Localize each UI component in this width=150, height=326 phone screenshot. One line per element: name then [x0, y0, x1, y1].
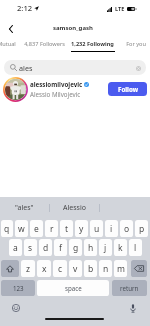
button[interactable]: 1,232 Following	[69, 35, 116, 51]
staticText: l	[134, 242, 137, 254]
staticText: 2:12	[17, 3, 33, 13]
staticText: i	[110, 223, 113, 235]
staticText: alessiomilvojevic	[30, 80, 83, 88]
staticText: q	[4, 223, 10, 235]
staticText: v	[73, 263, 78, 275]
button[interactable]: q	[1, 220, 13, 237]
button[interactable]: Alessio	[49, 197, 99, 218]
button[interactable]: f	[54, 239, 67, 256]
staticText: h	[88, 242, 94, 254]
button[interactable]: y	[75, 220, 88, 237]
button[interactable]: 4,837 Followers	[21, 35, 67, 51]
button[interactable]: n	[99, 260, 112, 277]
staticText: m	[117, 263, 125, 275]
button[interactable]: Back	[3, 21, 18, 36]
staticText: w	[18, 223, 25, 235]
staticText: a	[13, 242, 18, 254]
staticText: ales	[19, 63, 33, 73]
staticText: z	[26, 263, 30, 275]
button[interactable]: j	[99, 239, 112, 256]
button[interactable]: i	[105, 220, 118, 237]
staticText: n	[103, 263, 109, 275]
button[interactable]: For you	[120, 35, 150, 51]
staticText: s	[28, 242, 33, 254]
staticText: 4,837 Followers	[24, 40, 65, 48]
staticText: Mutual	[0, 40, 16, 48]
button[interactable]: s	[24, 239, 37, 256]
button[interactable]: Shift	[1, 260, 19, 277]
button[interactable]: l	[129, 239, 142, 256]
staticText: r	[50, 223, 54, 235]
staticText: y	[79, 223, 84, 235]
button[interactable]: Emoji keyboard	[11, 303, 21, 313]
staticText: "ales"	[15, 203, 34, 213]
staticText: 1,232 Following	[71, 40, 114, 48]
button[interactable]: c	[53, 260, 67, 277]
button[interactable]: Backspace	[131, 260, 147, 277]
button[interactable]: u	[90, 220, 103, 237]
button[interactable]: h	[84, 239, 97, 256]
staticText: For you	[126, 40, 146, 48]
staticText: space	[65, 284, 82, 292]
button[interactable]: v	[69, 260, 82, 277]
button[interactable]: r	[45, 220, 58, 237]
staticText: LTE	[115, 5, 125, 13]
staticText: j	[104, 242, 107, 254]
button[interactable]: k	[114, 239, 127, 256]
button[interactable]: a	[9, 239, 22, 256]
button[interactable]: t	[60, 220, 73, 237]
staticText: c	[58, 263, 63, 275]
staticText: Alessio Milvojevic	[30, 90, 81, 98]
staticText: return	[120, 284, 139, 292]
staticText: g	[73, 242, 79, 254]
button[interactable]: m	[114, 260, 127, 277]
button[interactable]: g	[69, 239, 82, 256]
staticText: Follow	[118, 85, 138, 93]
staticText: t	[65, 223, 69, 235]
staticText: d	[43, 242, 49, 254]
button[interactable]: o	[120, 220, 133, 237]
button[interactable]: Mutual	[0, 35, 17, 51]
staticText: o	[124, 223, 130, 235]
staticText: k	[118, 242, 123, 254]
staticText: samson_gash	[53, 24, 93, 32]
button[interactable]: p	[135, 220, 148, 237]
staticText: f	[59, 242, 62, 254]
button[interactable]: e	[30, 220, 43, 237]
button[interactable]: space	[37, 280, 109, 296]
button[interactable]: Clear text	[134, 64, 142, 72]
button[interactable]: z	[21, 260, 35, 277]
button[interactable]: Follow	[108, 82, 147, 96]
button[interactable]: w	[15, 220, 28, 237]
button[interactable]: b	[84, 260, 97, 277]
button[interactable]: "ales"	[0, 197, 49, 218]
button[interactable]: ales	[4, 60, 146, 75]
staticText: Alessio	[63, 203, 86, 213]
button[interactable]: alessiomilvojevic	[0, 75, 150, 103]
staticText: x	[42, 263, 47, 275]
staticText: e	[34, 223, 39, 235]
staticText: b	[88, 263, 94, 275]
button[interactable]: d	[39, 239, 52, 256]
staticText: p	[139, 223, 145, 235]
staticText: 123	[13, 284, 24, 292]
button[interactable]: Voice input	[128, 303, 138, 313]
staticText: u	[94, 223, 100, 235]
button[interactable]: 123	[1, 280, 35, 296]
button[interactable]: return	[112, 280, 147, 296]
button[interactable]: x	[37, 260, 51, 277]
